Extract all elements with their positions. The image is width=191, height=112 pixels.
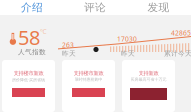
staticText: 人气指数 bbox=[18, 48, 46, 56]
button[interactable]: 发现 bbox=[126, 0, 191, 15]
staticText: 买房最高可省十万元 bbox=[130, 77, 166, 82]
staticText: 昨天 bbox=[121, 49, 135, 58]
button[interactable]: 支持楼市新政 bbox=[2, 60, 55, 112]
staticText: 昨天 bbox=[62, 49, 76, 58]
staticText: 支持楼市新政 bbox=[73, 70, 103, 77]
button[interactable]: 评论 bbox=[64, 0, 126, 15]
staticText: 42865 bbox=[171, 28, 191, 37]
staticText: ℃ bbox=[40, 27, 47, 36]
button[interactable]: 支持楼市新政 bbox=[62, 60, 115, 112]
staticText: 支持新政 bbox=[138, 70, 158, 77]
staticText: 介绍 bbox=[21, 1, 43, 14]
staticText: 17030 bbox=[117, 34, 137, 43]
button[interactable]: 介绍 bbox=[0, 0, 64, 15]
staticText: 263 bbox=[62, 40, 74, 49]
button[interactable]: 支持新政 bbox=[122, 60, 175, 112]
staticText: 58 bbox=[18, 24, 40, 51]
staticText: 支持楼市新政 bbox=[13, 70, 43, 77]
staticText: 评论 bbox=[84, 1, 106, 14]
staticText: 房价降低·买房省钱 bbox=[12, 77, 45, 82]
staticText: 累计今天 bbox=[164, 49, 191, 58]
staticText: 发现 bbox=[147, 1, 169, 14]
staticText: 限时特惠抢购中 bbox=[74, 77, 102, 82]
